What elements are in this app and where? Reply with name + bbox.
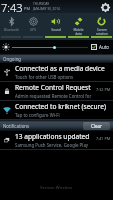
staticText: Remote Control Request — [15, 83, 91, 92]
button[interactable]: 13 applications updated — [0, 131, 113, 150]
staticText: 7:32 PM — [96, 87, 111, 92]
button[interactable]: Auto — [91, 44, 110, 50]
staticText: GPS — [30, 28, 36, 32]
staticText: Mobile data — [73, 28, 84, 36]
button[interactable]: Sound — [44, 13, 67, 40]
staticText: Auto — [99, 44, 110, 50]
staticText: Connected as a media device — [15, 64, 105, 73]
staticText: Sound — [51, 28, 61, 32]
staticText: Clear — [91, 123, 102, 129]
staticText: Samsung Push Service, Google Play — [15, 142, 89, 148]
button[interactable]: Clear — [83, 122, 110, 130]
staticText: Admin requested Remote Control for troub… — [15, 93, 94, 99]
button[interactable]: Screen rotation — [90, 13, 113, 40]
staticText: 7:41 PM — [96, 136, 111, 141]
staticText: Touch for other USB options — [15, 74, 74, 80]
staticText: Ongoing — [3, 56, 22, 62]
staticText: 13 applications updated — [15, 132, 90, 141]
button[interactable]: GPS — [22, 13, 44, 40]
staticText: Verizon Wireless — [40, 185, 73, 191]
button[interactable]: Connected to kriknet (secure) — [0, 101, 113, 120]
staticText: Screen rotation — [96, 28, 108, 36]
button[interactable]: Connected as a media device — [0, 63, 113, 82]
staticText: JANUARY 30, 2014 — [33, 7, 60, 11]
staticText: Bluetooth — [4, 28, 19, 32]
button[interactable]: Mobile data — [67, 13, 90, 40]
button[interactable]: Remote Control Request — [0, 82, 113, 101]
button[interactable]: Bluetooth — [0, 13, 22, 40]
staticText: Tap to configure Wi-Fi — [15, 112, 60, 118]
staticText: PM — [24, 6, 31, 11]
staticText: Notifications — [3, 123, 30, 129]
staticText: THURSDAY — [33, 2, 50, 6]
button[interactable]: Settings — [99, 1, 111, 13]
staticText: Connected to kriknet (secure) — [15, 102, 106, 111]
staticText: 7:43 — [1, 0, 23, 13]
